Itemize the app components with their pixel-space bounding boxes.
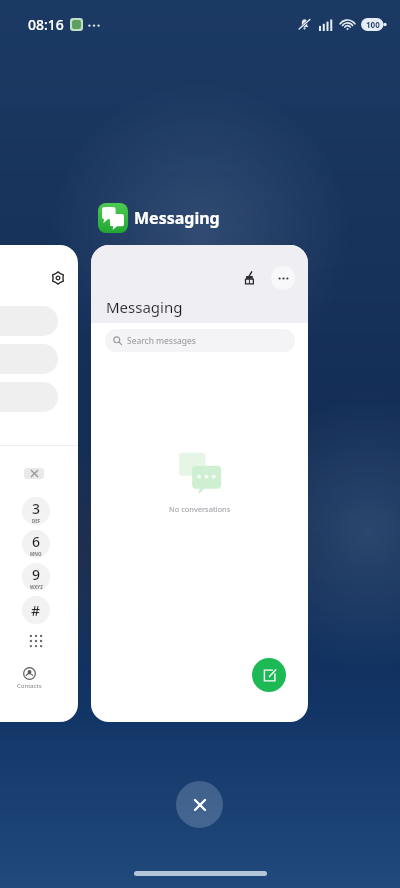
button[interactable]: 6 <box>22 530 50 558</box>
button[interactable] <box>0 306 58 336</box>
button[interactable]: More options <box>271 266 295 290</box>
staticText: 3 <box>32 499 41 518</box>
staticText: MNO <box>30 551 42 557</box>
button[interactable] <box>0 382 58 412</box>
other: Clean up <box>243 271 257 285</box>
staticText: WXYZ <box>30 584 43 590</box>
button[interactable]: 9 <box>22 563 50 591</box>
button[interactable]: Clear all <box>176 781 223 828</box>
button[interactable]: Contacts <box>17 667 42 690</box>
button[interactable] <box>24 468 44 479</box>
button[interactable]: 3 <box>0 245 78 722</box>
button[interactable]: Messaging <box>98 203 220 233</box>
staticText: 100 <box>366 19 380 30</box>
staticText: Messaging <box>134 207 220 229</box>
staticText: No conversations <box>169 504 231 514</box>
staticText: 08:16 <box>28 15 64 34</box>
button[interactable]: # <box>22 596 50 624</box>
staticText: DEF <box>32 518 41 524</box>
button[interactable]: New conversation <box>252 658 286 692</box>
button[interactable] <box>0 344 58 374</box>
button[interactable]: 3 <box>22 497 50 525</box>
staticText: Contacts <box>17 682 42 690</box>
staticText: 9 <box>32 565 41 584</box>
staticText: # <box>31 601 41 620</box>
button[interactable]: Search messages <box>105 329 295 352</box>
staticText: Search messages <box>127 335 196 347</box>
staticText: Messaging <box>106 297 183 317</box>
staticText: 6 <box>32 532 41 551</box>
button[interactable]: Clean up <box>91 245 308 722</box>
